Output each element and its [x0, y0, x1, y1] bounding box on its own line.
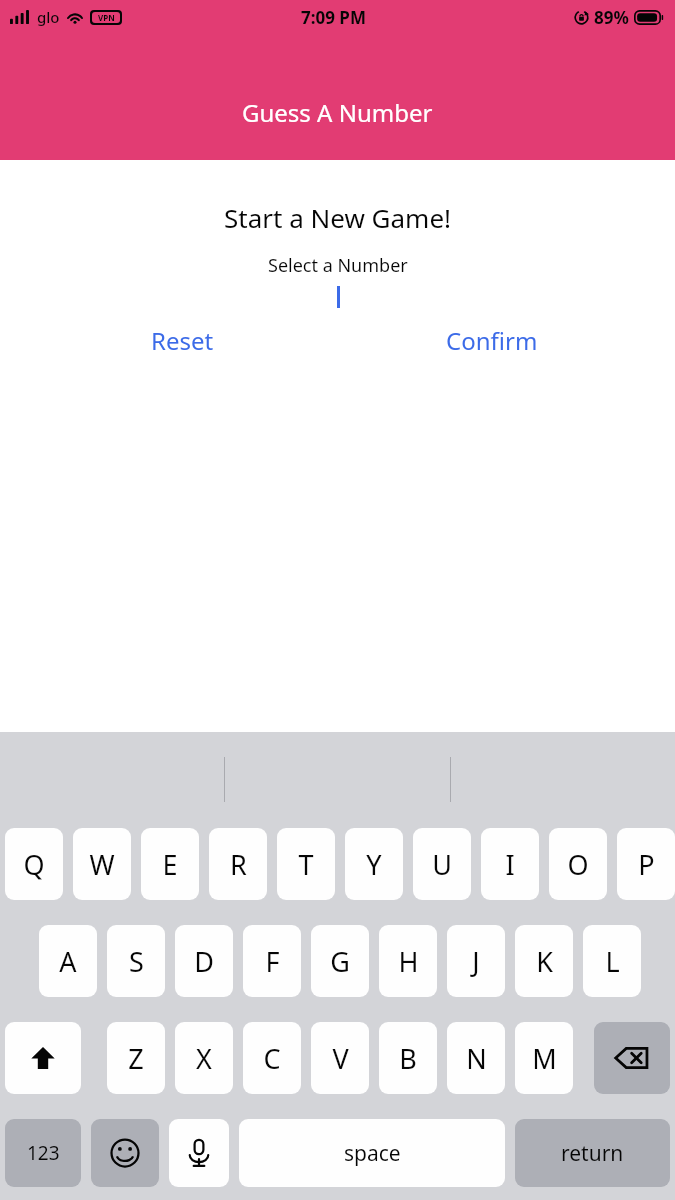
button[interactable]: Z	[107, 1022, 165, 1094]
button[interactable]: Reset	[28, 324, 337, 357]
staticText: A	[59, 943, 77, 980]
button[interactable]: X	[175, 1022, 233, 1094]
button[interactable]: R	[209, 828, 267, 900]
button[interactable]: Y	[345, 828, 403, 900]
staticText: R	[230, 846, 247, 883]
staticText: U	[432, 846, 452, 883]
button[interactable]: O	[549, 828, 607, 900]
staticText: I	[505, 846, 515, 883]
staticText: Reset	[151, 324, 214, 357]
button[interactable]: Backspace	[594, 1022, 670, 1094]
button[interactable]: K	[515, 925, 573, 997]
button[interactable]: L	[583, 925, 641, 997]
button[interactable]: Dictation	[169, 1119, 229, 1187]
button[interactable]: Q	[5, 828, 63, 900]
staticText: D	[194, 943, 214, 980]
staticText: F	[265, 943, 280, 980]
staticText: M	[532, 1040, 557, 1077]
button[interactable]: F	[243, 925, 301, 997]
button[interactable]: J	[447, 925, 505, 997]
button[interactable]: V	[311, 1022, 369, 1094]
button[interactable]: Emoji	[91, 1119, 159, 1187]
staticText: K	[536, 943, 553, 980]
staticText: V	[332, 1040, 349, 1077]
button[interactable]: M	[515, 1022, 573, 1094]
staticText: S	[129, 943, 144, 980]
staticText: Guess A Number	[242, 96, 433, 129]
staticText: L	[605, 943, 620, 980]
button[interactable]: space	[239, 1119, 505, 1187]
button[interactable]: A	[39, 925, 97, 997]
button[interactable]: return	[515, 1119, 670, 1187]
button[interactable]: G	[311, 925, 369, 997]
button[interactable]: C	[243, 1022, 301, 1094]
button[interactable]: B	[379, 1022, 437, 1094]
button[interactable]: N	[447, 1022, 505, 1094]
staticText: H	[398, 943, 419, 980]
staticText: T	[298, 846, 314, 883]
staticText: Select a Number	[268, 253, 408, 278]
staticText: X	[196, 1040, 212, 1077]
staticText: space	[344, 1139, 401, 1168]
button[interactable]: Confirm	[337, 324, 647, 357]
button[interactable]: E	[141, 828, 199, 900]
staticText: 123	[27, 1140, 60, 1166]
staticText: Confirm	[446, 324, 538, 357]
staticText: E	[162, 846, 178, 883]
staticText: N	[466, 1040, 487, 1077]
button[interactable]: D	[175, 925, 233, 997]
button[interactable]: I	[481, 828, 539, 900]
staticText: Start a New Game!	[224, 200, 452, 235]
button[interactable]: W	[73, 828, 131, 900]
staticText: Q	[23, 846, 45, 883]
button[interactable]: Shift	[5, 1022, 81, 1094]
staticText: J	[472, 943, 480, 980]
button[interactable]: P	[617, 828, 675, 900]
staticText: O	[567, 846, 589, 883]
button[interactable]: 123	[5, 1119, 81, 1187]
staticText: C	[263, 1040, 281, 1077]
staticText: VPN	[98, 12, 115, 23]
staticText: glo	[37, 7, 60, 27]
button[interactable]: H	[379, 925, 437, 997]
staticText: Z	[128, 1040, 144, 1077]
staticText: G	[330, 943, 350, 980]
staticText: P	[638, 846, 655, 883]
button[interactable]: U	[413, 828, 471, 900]
button[interactable]: S	[107, 925, 165, 997]
staticText: W	[89, 846, 115, 883]
staticText: 89%	[594, 6, 629, 29]
staticText: B	[399, 1040, 417, 1077]
staticText: 7:09 PM	[301, 6, 366, 29]
button[interactable]: T	[277, 828, 335, 900]
staticText: return	[561, 1139, 624, 1168]
staticText: Y	[366, 846, 382, 883]
